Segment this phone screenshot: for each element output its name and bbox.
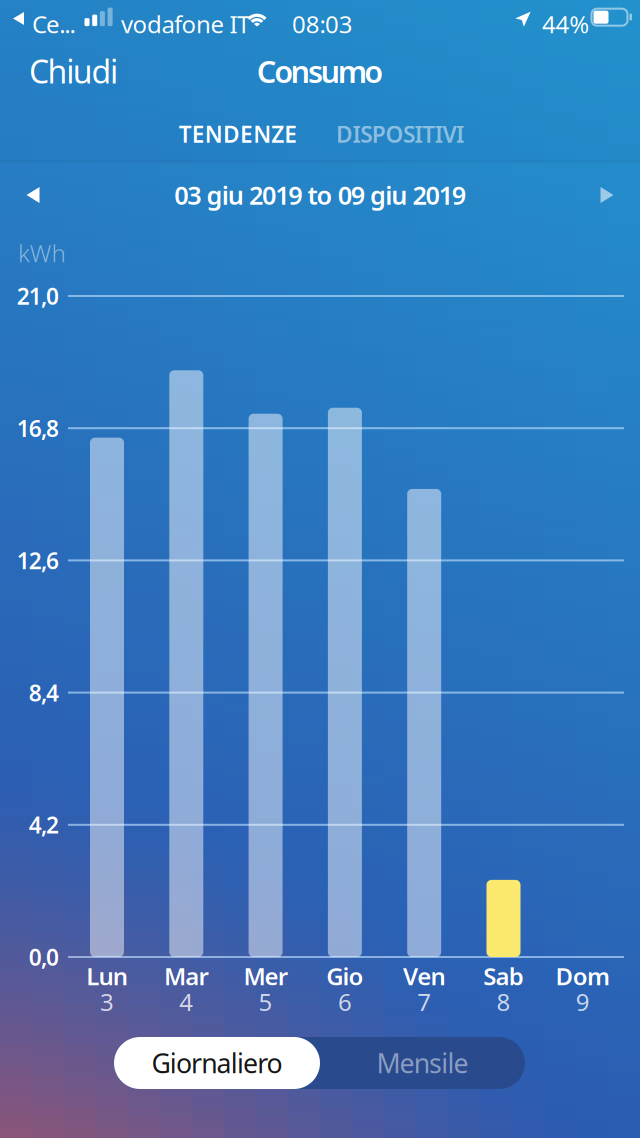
button[interactable]: Chiudi	[29, 46, 149, 96]
staticText: 8	[496, 986, 510, 1018]
staticText: 16,8	[17, 413, 59, 443]
button[interactable]: Mensile	[320, 1037, 525, 1089]
staticText: 44%	[542, 8, 589, 40]
staticText: Giornaliero	[151, 1045, 282, 1081]
staticText: Consumo	[257, 51, 383, 91]
staticText: Dom	[556, 960, 610, 992]
staticText: 3	[100, 986, 114, 1018]
staticText: Mer	[243, 960, 288, 992]
staticText: vodafone IT	[121, 8, 250, 40]
button[interactable]: Giornaliero	[114, 1037, 320, 1089]
staticText: 08:03	[292, 8, 353, 40]
staticText: 6	[338, 986, 352, 1018]
staticText: Mensile	[376, 1045, 469, 1081]
staticText: Ven	[403, 960, 445, 992]
staticText: TENDENZE	[179, 119, 297, 149]
staticText: 8,4	[29, 677, 59, 708]
staticText: Lun	[86, 960, 128, 992]
staticText: 0,0	[29, 942, 59, 972]
staticText: Chiudi	[29, 50, 118, 92]
button[interactable]: TENDENZE	[158, 112, 318, 156]
staticText: 03 giu 2019 to 09 giu 2019	[174, 178, 466, 212]
staticText: kWh	[18, 237, 66, 269]
staticText: 4	[179, 986, 193, 1018]
button[interactable]: Previous period	[4, 167, 62, 223]
staticText: 4,2	[29, 810, 59, 840]
staticText: 9	[576, 986, 590, 1018]
staticText: 21,0	[17, 281, 59, 311]
staticText: Sab	[483, 960, 524, 992]
button[interactable]: Next period	[578, 167, 636, 223]
staticText: DISPOSITIVI	[336, 119, 464, 149]
staticText: Mar	[164, 960, 208, 992]
staticText: Ce...	[32, 8, 75, 40]
staticText: 7	[417, 986, 431, 1018]
button[interactable]: DISPOSITIVI	[316, 112, 484, 156]
staticText: 5	[259, 986, 273, 1018]
staticText: Gio	[326, 960, 364, 992]
staticText: 12,6	[17, 545, 59, 575]
